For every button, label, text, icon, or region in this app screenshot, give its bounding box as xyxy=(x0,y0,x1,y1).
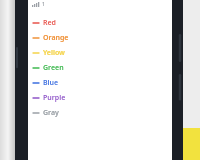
other: Yellow swatch xyxy=(33,50,39,56)
button[interactable]: Red swatch xyxy=(28,15,172,30)
other: Red swatch xyxy=(33,20,39,26)
button[interactable]: Green swatch xyxy=(28,60,172,75)
staticText: Blue xyxy=(43,78,59,88)
other: Green swatch xyxy=(33,65,39,71)
button[interactable]: Orange swatch xyxy=(28,30,172,45)
staticText: Yellow xyxy=(43,48,65,58)
staticText: Green xyxy=(43,63,64,73)
other: Blue swatch xyxy=(33,80,39,86)
button[interactable]: Blue swatch xyxy=(28,75,172,90)
staticText: Red xyxy=(43,18,56,28)
staticText: Purple xyxy=(43,93,66,103)
other: Orange swatch xyxy=(33,35,39,41)
other: Purple swatch xyxy=(33,95,39,101)
staticText: 1 xyxy=(42,1,45,8)
staticText: Orange xyxy=(43,33,69,43)
button[interactable]: Purple swatch xyxy=(28,90,172,105)
button[interactable]: Yellow swatch xyxy=(28,45,172,60)
button[interactable]: Gray swatch xyxy=(28,105,172,120)
staticText: Gray xyxy=(43,108,59,118)
other: Gray swatch xyxy=(33,110,39,116)
